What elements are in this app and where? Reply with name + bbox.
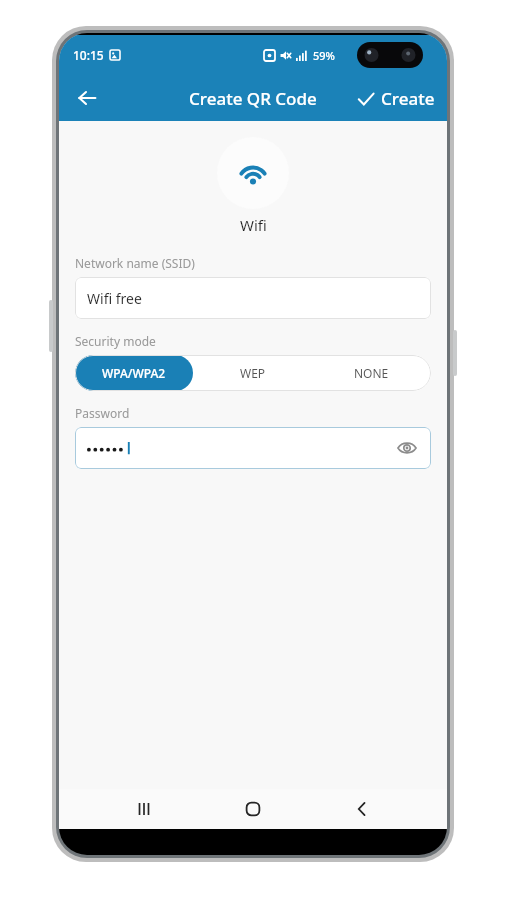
staticText: Password (75, 405, 130, 421)
button[interactable]: NONE (312, 355, 431, 391)
staticText: 59% (313, 48, 335, 63)
staticText: Security mode (75, 333, 156, 349)
button[interactable]: Show password (391, 432, 423, 464)
staticText: Network name (SSID) (75, 255, 195, 271)
staticText: NONE (354, 365, 389, 381)
button[interactable]: Recent apps (120, 789, 168, 829)
staticText: Wifi free (87, 289, 142, 308)
staticText: Create (381, 87, 435, 110)
staticText: WPA/WPA2 (102, 365, 166, 381)
staticText: WEP (240, 365, 266, 381)
staticText: Create QR Code (189, 87, 317, 110)
staticText: Wifi (240, 215, 267, 235)
button[interactable]: WPA/WPA2 (75, 355, 193, 391)
staticText: 10:15 (73, 47, 104, 63)
button[interactable]: WEP (193, 355, 312, 391)
button[interactable]: Home (229, 789, 277, 829)
button[interactable]: Create (353, 81, 439, 116)
button[interactable]: Back (65, 76, 109, 120)
button[interactable]: Back (338, 789, 386, 829)
button[interactable]: Wifi free (75, 277, 431, 319)
button[interactable]: Show password (75, 427, 431, 469)
